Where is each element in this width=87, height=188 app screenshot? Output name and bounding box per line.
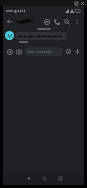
- button[interactable]: Camera: [14, 47, 23, 56]
- staticText: Text message: [27, 49, 53, 54]
- button[interactable]: Search: [62, 15, 72, 28]
- button[interactable]: Back: [5, 17, 14, 26]
- button[interactable]: Add attachment: [5, 47, 14, 56]
- button[interactable]: Sender avatar: [5, 31, 14, 40]
- button[interactable]: Video call: [42, 15, 52, 28]
- button[interactable]: Maximize: [73, 0, 79, 6]
- button[interactable]: Close: [79, 0, 85, 6]
- button[interactable]: Contact details: [15, 19, 42, 24]
- button[interactable]: Stickers: [64, 47, 73, 56]
- button[interactable]: More options: [72, 15, 82, 28]
- button[interactable]: Back: [20, 171, 36, 185]
- button[interactable]: Voice message: [73, 47, 82, 56]
- button[interactable]: [16, 32, 67, 40]
- staticText: M: [7, 32, 13, 40]
- button[interactable]: Text message: [24, 47, 63, 56]
- button[interactable]: Home: [36, 171, 52, 185]
- button[interactable]: Call: [52, 15, 62, 28]
- button[interactable]: Recent apps: [52, 171, 68, 185]
